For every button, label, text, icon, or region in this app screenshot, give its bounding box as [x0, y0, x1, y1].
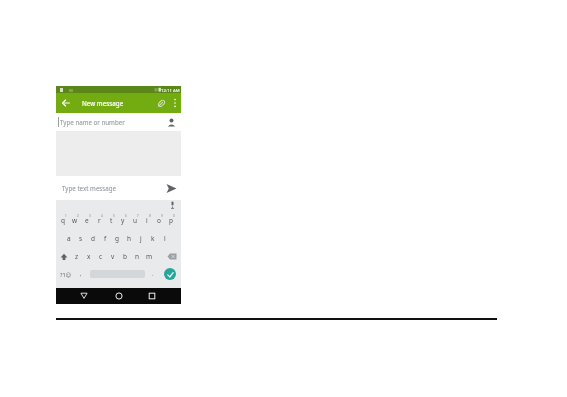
staticText: z	[75, 252, 79, 261]
staticText: 7	[137, 214, 139, 218]
staticText: 9	[161, 214, 163, 218]
button[interactable]	[80, 292, 88, 300]
staticText: w	[72, 216, 78, 225]
button[interactable]: .	[152, 270, 154, 278]
staticText: x	[87, 252, 91, 261]
staticText: p	[169, 216, 173, 225]
staticText: t	[110, 216, 113, 225]
staticText: b	[123, 252, 127, 261]
staticText: Type name or number	[60, 118, 125, 126]
staticText: a	[67, 234, 71, 243]
staticText: o	[157, 216, 161, 225]
staticText: 12:11 AM	[161, 87, 180, 93]
button[interactable]: Type name or number	[56, 113, 181, 131]
button[interactable]: ?1☺	[60, 271, 72, 278]
staticText: r	[98, 216, 101, 225]
staticText: 2	[77, 214, 79, 218]
staticText: 1	[65, 214, 67, 218]
staticText: c	[99, 252, 103, 261]
button[interactable]	[115, 292, 123, 300]
staticText: 8	[149, 214, 151, 218]
button[interactable]	[62, 99, 70, 107]
staticText: 3	[89, 214, 91, 218]
staticText: j	[140, 234, 142, 243]
button[interactable]	[60, 253, 68, 261]
button[interactable]	[167, 253, 177, 260]
staticText: Type text message	[62, 184, 117, 192]
staticText: q	[61, 216, 65, 225]
button[interactable]	[167, 118, 176, 127]
button[interactable]	[164, 268, 176, 280]
staticText: v	[111, 252, 115, 261]
staticText: g	[115, 234, 119, 243]
staticText: n	[135, 252, 140, 261]
staticText: d	[91, 234, 95, 243]
staticText: e	[85, 216, 89, 225]
staticText: m	[146, 252, 153, 261]
staticText: l	[164, 234, 166, 243]
button[interactable]	[148, 292, 156, 300]
staticText: 0	[173, 214, 175, 218]
staticText: s	[79, 234, 83, 243]
staticText: y	[121, 216, 125, 225]
staticText: New message	[82, 99, 124, 107]
staticText: 4	[101, 214, 103, 218]
button[interactable]	[156, 98, 167, 109]
staticText: 5	[113, 214, 115, 218]
button[interactable]	[173, 98, 177, 108]
staticText: i	[146, 216, 148, 225]
button[interactable]: ,	[80, 270, 82, 278]
staticText: k	[151, 234, 155, 243]
button[interactable]: Type text message	[56, 176, 181, 200]
staticText: u	[133, 216, 138, 225]
staticText: f	[104, 234, 107, 243]
button[interactable]	[166, 183, 177, 194]
staticText: 6	[125, 214, 127, 218]
staticText: h	[127, 234, 132, 243]
button[interactable]	[170, 201, 175, 209]
